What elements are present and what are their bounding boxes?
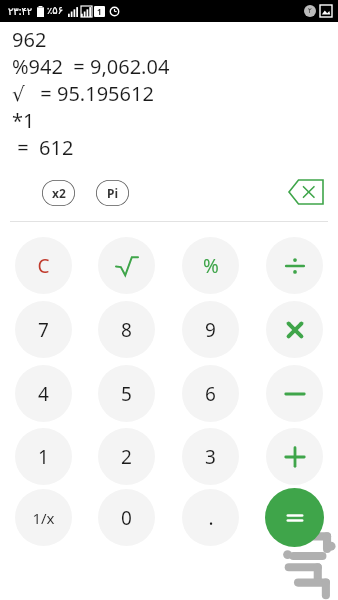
button[interactable]: 0 bbox=[98, 489, 155, 546]
button[interactable]: Multiply bbox=[266, 301, 323, 358]
button[interactable]: Plus bbox=[266, 428, 323, 485]
button[interactable]: 6 bbox=[182, 365, 239, 422]
staticText: *1 bbox=[12, 107, 35, 134]
staticText: 2 bbox=[121, 444, 132, 470]
button[interactable]: 9 bbox=[182, 301, 239, 358]
button[interactable]: C bbox=[15, 237, 72, 294]
staticText: √ = 95.195612 bbox=[12, 80, 154, 107]
button[interactable]: 1 bbox=[15, 428, 72, 485]
button[interactable]: 1/x bbox=[15, 489, 72, 546]
staticText: 1/x bbox=[32, 508, 55, 528]
staticText: 3 bbox=[205, 444, 216, 470]
button[interactable]: x2 bbox=[42, 180, 75, 206]
button[interactable]: Pi bbox=[96, 180, 129, 206]
staticText: 7 bbox=[38, 317, 49, 343]
button[interactable]: 5 bbox=[98, 365, 155, 422]
staticText: 9 bbox=[205, 317, 216, 343]
staticText: ۲ bbox=[308, 7, 312, 15]
button[interactable]: 7 bbox=[15, 301, 72, 358]
staticText: C bbox=[37, 253, 50, 279]
staticText: ۲۳:۴۲ bbox=[8, 4, 33, 18]
staticText: = 612 bbox=[12, 134, 74, 161]
staticText: % bbox=[203, 253, 219, 279]
button[interactable]: % bbox=[182, 237, 239, 294]
staticText: ٪۵۶ bbox=[47, 5, 64, 17]
staticText: 8 bbox=[121, 317, 132, 343]
staticText: 5 bbox=[121, 381, 132, 407]
button[interactable]: . bbox=[182, 489, 239, 546]
staticText: 0 bbox=[121, 505, 132, 531]
staticText: 6 bbox=[205, 381, 216, 407]
staticText: 1 bbox=[97, 6, 102, 17]
staticText: . bbox=[208, 505, 214, 531]
button[interactable]: Backspace bbox=[289, 180, 323, 204]
staticText: %942 = 9,062.04 bbox=[12, 53, 170, 80]
button[interactable]: 4 bbox=[15, 365, 72, 422]
staticText: 962 bbox=[12, 26, 47, 53]
button[interactable]: Equals bbox=[265, 488, 324, 547]
button[interactable]: Minus bbox=[266, 365, 323, 422]
staticText: 1 bbox=[38, 444, 49, 470]
staticText: Pi bbox=[107, 185, 119, 201]
button[interactable]: 2 bbox=[98, 428, 155, 485]
staticText: x2 bbox=[52, 185, 66, 201]
button[interactable]: Divide bbox=[266, 237, 323, 294]
button[interactable]: 3 bbox=[182, 428, 239, 485]
button[interactable]: 8 bbox=[98, 301, 155, 358]
button[interactable]: Square root bbox=[98, 237, 155, 294]
staticText: 4 bbox=[38, 381, 49, 407]
